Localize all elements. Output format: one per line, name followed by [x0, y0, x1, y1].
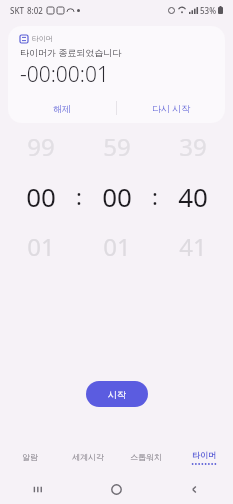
button[interactable]: 39: [162, 129, 224, 163]
button[interactable]: 40: [162, 179, 224, 213]
staticText: 해제: [53, 103, 71, 114]
staticText: 41: [179, 230, 207, 263]
staticText: 40: [178, 179, 208, 213]
staticText: 알람: [22, 452, 38, 462]
staticText: 00: [26, 179, 56, 213]
button[interactable]: 01: [86, 229, 148, 263]
staticText: :: [152, 181, 158, 211]
staticText: 99: [27, 130, 55, 163]
staticText: 타이머: [192, 450, 216, 460]
staticText: SKT: [10, 5, 24, 16]
button[interactable]: 59: [86, 129, 148, 163]
staticText: 스톱워치: [130, 452, 162, 462]
staticText: 59: [103, 130, 131, 163]
staticText: -00:00:01: [20, 60, 109, 89]
button[interactable]: 다시 시작: [117, 95, 225, 121]
staticText: 01: [103, 230, 131, 263]
staticText: 39: [179, 130, 207, 163]
button[interactable]: 01: [10, 229, 72, 263]
button[interactable]: Recents: [0, 474, 77, 504]
staticText: 시작: [108, 389, 126, 400]
staticText: 53%: [200, 5, 216, 16]
staticText: :: [76, 181, 82, 211]
button[interactable]: 알람: [0, 440, 59, 474]
staticText: 타이머: [32, 34, 53, 43]
button[interactable]: 99: [10, 129, 72, 163]
button[interactable]: 스톱워치: [117, 440, 175, 474]
button[interactable]: 41: [162, 229, 224, 263]
button[interactable]: 타이머: [175, 440, 233, 474]
staticText: 01: [27, 230, 55, 263]
staticText: 다시 시작: [152, 102, 191, 114]
button[interactable]: 시작: [86, 381, 148, 407]
button[interactable]: Home: [77, 474, 155, 504]
staticText: 8:02: [27, 5, 43, 16]
button[interactable]: 00: [86, 179, 148, 213]
staticText: 타이머가 종료되었습니다: [20, 46, 122, 58]
button[interactable]: 해제: [8, 95, 116, 121]
staticText: 00: [102, 179, 132, 213]
button[interactable]: 세계시각: [59, 440, 117, 474]
staticText: 세계시각: [72, 452, 104, 462]
button[interactable]: Back: [155, 474, 233, 504]
button[interactable]: 00: [10, 179, 72, 213]
